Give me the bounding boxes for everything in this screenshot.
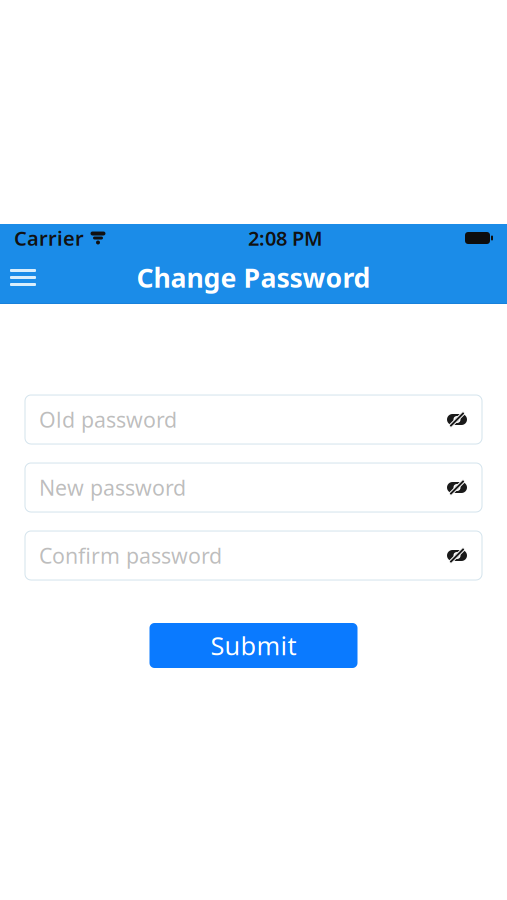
button[interactable]: Menu bbox=[0, 255, 46, 299]
button[interactable]: Confirm password bbox=[0, 531, 507, 580]
button[interactable]: New password bbox=[0, 463, 507, 512]
button[interactable]: Submit bbox=[149, 623, 357, 668]
staticText: Carrier bbox=[14, 225, 84, 251]
staticText: Submit bbox=[210, 629, 296, 662]
staticText: Confirm password bbox=[39, 541, 222, 570]
staticText: Old password bbox=[39, 405, 177, 434]
staticText: New password bbox=[39, 473, 186, 502]
staticText: Change Password bbox=[136, 260, 370, 295]
button[interactable]: Old password bbox=[0, 395, 507, 444]
staticText: 2:08 PM bbox=[248, 225, 323, 251]
